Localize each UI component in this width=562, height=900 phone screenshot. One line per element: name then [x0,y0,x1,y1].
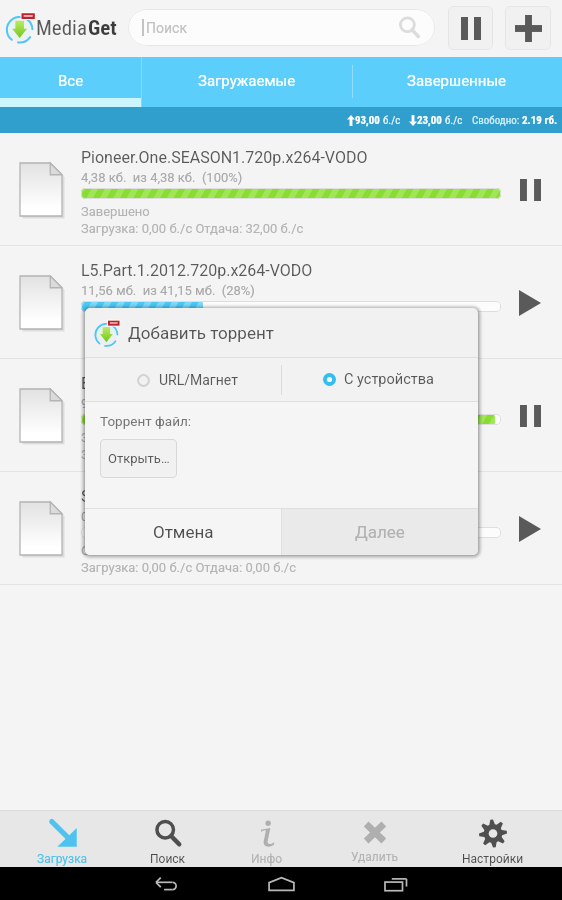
staticText: б./с [383,114,401,127]
button[interactable]: Открыть… [100,439,177,478]
button[interactable]: Recents [368,867,422,900]
staticText: Добавить торрент [128,323,274,343]
staticText: URL/Магнет [159,372,238,388]
staticText: Pioneer.One.SEASON1.720p.x264-VODO [81,148,368,167]
button[interactable]: Pause [500,359,560,472]
staticText: 98,00 мб. из 100,00 мб. (98%) [81,396,263,411]
staticText: Остановлено [81,543,162,558]
button[interactable]: Pause all [448,6,493,50]
staticText: Поиск [150,852,186,866]
button[interactable]: Pause [500,133,560,246]
staticText: Завершено [81,430,150,445]
button[interactable]: Pioneer.One.SEASON1.720p.x264-VODO [0,133,562,246]
staticText: 2.19 гб. [522,114,558,127]
staticText: 23,00 [417,114,445,127]
button[interactable]: Загрузка [10,810,115,867]
button[interactable]: Все [0,57,141,107]
button[interactable]: Настройки [438,810,548,867]
staticText: Media [36,16,88,41]
staticText: Загрузка: 0,00 б./с Отдача: 32,00 б./с [81,221,304,236]
staticText: Sintel.2010.720p.x264-VODO [81,487,288,506]
button[interactable]: Отмена [85,509,281,555]
button[interactable]: L5.Part.1.2012.720p.x264-VODO [0,246,562,359]
staticText: 11,56 мб. из 41,15 мб. (28%) [81,283,255,298]
button[interactable]: Sintel.2010.720p.x264-VODO [0,472,562,585]
staticText: Удалить [351,850,398,864]
staticText: Загрузка [37,852,88,866]
staticText: б./с [445,114,463,127]
staticText: Свободно: [472,114,522,127]
button[interactable]: Add torrent [505,6,551,50]
staticText: Далее [355,522,405,542]
button[interactable]: Поиск [115,810,220,867]
staticText: Get [88,16,117,41]
button[interactable]: Play [500,246,560,359]
staticText: Все [58,72,84,90]
button[interactable]: Big.Buck.Bunny.720p.x264-VODO [0,359,562,472]
staticText: С устройства [344,371,434,388]
button[interactable]: Далее [282,509,478,555]
staticText: L5.Part.1.2012.720p.x264-VODO [81,261,313,280]
staticText: Загрузка: 0,00 б./с Отдача: 0,00 б./с [81,447,296,462]
staticText: Big.Buck.Bunny.720p.x264-VODO [81,374,318,393]
button[interactable]: Удалить [321,810,428,867]
button[interactable]: Home [254,867,308,900]
staticText: 0,00 мб. из 64,00 мб. (0%) [81,509,241,524]
staticText: Завершенные [407,72,507,90]
staticText: Открыть… [108,451,170,466]
staticText: 4,38 кб. из 4,38 кб. (100%) [81,170,243,185]
staticText: Завершено [81,204,150,219]
button[interactable]: Инфо [217,810,316,867]
staticText: Загрузка: 0,00 б./с Отдача: 0,00 б./с [81,560,296,575]
staticText: Инфо [251,852,283,866]
staticText: Отмена [153,522,214,542]
staticText: 93,00 [355,114,383,127]
staticText: Настройки [462,852,524,866]
button[interactable]: Поиск [128,9,435,46]
button[interactable]: Загружаемые [141,57,352,107]
staticText: Торрент файл: [100,413,192,429]
button[interactable]: Play [500,472,560,585]
button[interactable]: Back [140,867,194,900]
button[interactable]: С устройства [282,358,478,401]
staticText: Загружаемые [198,72,296,90]
staticText: Поиск [146,20,187,36]
button[interactable]: URL/Магнет [85,358,281,401]
button[interactable]: Завершенные [352,57,562,107]
